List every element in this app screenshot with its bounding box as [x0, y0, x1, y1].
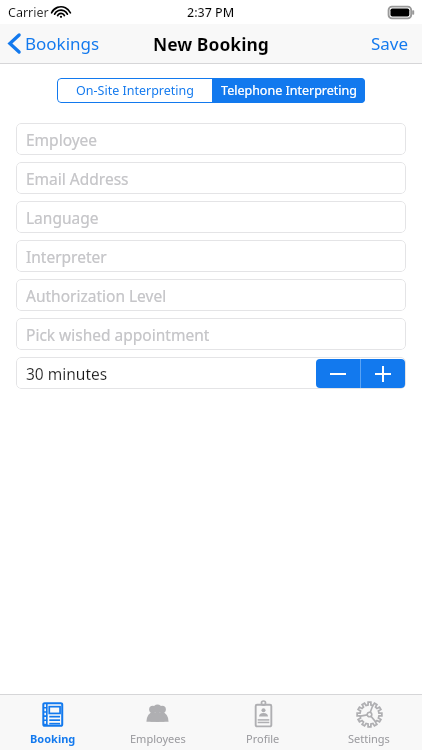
- button[interactable]: Interpreter: [16, 240, 406, 272]
- staticText: New Booking: [153, 32, 269, 56]
- staticText: Settings: [348, 731, 390, 746]
- staticText: Pick wished appointment: [26, 324, 210, 345]
- button[interactable]: Booking: [0, 695, 105, 750]
- staticText: Telephone Interpreting: [221, 82, 357, 99]
- button[interactable]: On-Site Interpreting: [57, 78, 212, 103]
- staticText: Employee: [26, 129, 98, 150]
- staticText: Carrier: [8, 4, 49, 21]
- button[interactable]: Authorization Level: [16, 279, 406, 311]
- staticText: Profile: [246, 731, 280, 746]
- button[interactable]: Profile: [210, 695, 316, 750]
- staticText: Save: [371, 32, 409, 55]
- staticText: Interpreter: [26, 246, 107, 267]
- staticText: Email Address: [26, 168, 129, 189]
- button[interactable]: Email Address: [16, 162, 406, 194]
- button[interactable]: Employees: [105, 695, 210, 750]
- button[interactable]: 30 minutes: [16, 357, 406, 389]
- staticText: Employees: [130, 731, 186, 746]
- staticText: Language: [26, 207, 99, 228]
- staticText: Bookings: [25, 32, 100, 55]
- staticText: Authorization Level: [26, 285, 167, 306]
- button[interactable]: Language: [16, 201, 406, 233]
- button[interactable]: Settings: [316, 695, 422, 750]
- button[interactable]: Increase duration: [361, 359, 405, 388]
- button[interactable]: Employee: [16, 123, 406, 155]
- button[interactable]: Save: [358, 26, 422, 61]
- button[interactable]: Decrease duration: [316, 359, 360, 388]
- button[interactable]: Pick wished appointment: [16, 318, 406, 350]
- staticText: 30 minutes: [26, 363, 108, 384]
- staticText: Booking: [30, 731, 76, 746]
- staticText: On-Site Interpreting: [76, 82, 194, 99]
- staticText: 2:37 PM: [187, 4, 235, 21]
- button[interactable]: Telephone Interpreting: [213, 78, 365, 103]
- button[interactable]: Bookings: [0, 28, 110, 59]
